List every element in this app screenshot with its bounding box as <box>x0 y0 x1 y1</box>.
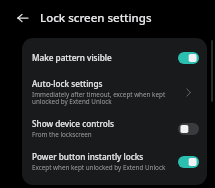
button[interactable]: Back <box>14 9 32 27</box>
button[interactable]: Power button instantly locks <box>22 145 207 178</box>
staticText: From the lockscreen <box>32 130 92 139</box>
staticText: Except when kept unlocked by Extend Unlo… <box>32 163 166 172</box>
staticText: Make pattern visible <box>32 52 112 63</box>
button[interactable]: Make pattern visible <box>22 43 207 72</box>
button[interactable]: Auto-lock settings <box>22 72 207 112</box>
staticText: Immediately after timeout, except when k… <box>32 90 172 106</box>
staticText: Show device controls <box>32 118 114 129</box>
button[interactable]: Toggle on <box>176 49 201 66</box>
staticText: Lock screen settings <box>40 10 152 26</box>
staticText: Auto-lock settings <box>32 78 103 89</box>
button[interactable]: Show device controls <box>22 112 207 145</box>
button[interactable]: Open auto-lock settings <box>176 84 201 101</box>
button[interactable]: Toggle off <box>176 120 201 137</box>
staticText: Power button instantly locks <box>32 151 144 162</box>
button[interactable]: Toggle on <box>176 153 201 170</box>
